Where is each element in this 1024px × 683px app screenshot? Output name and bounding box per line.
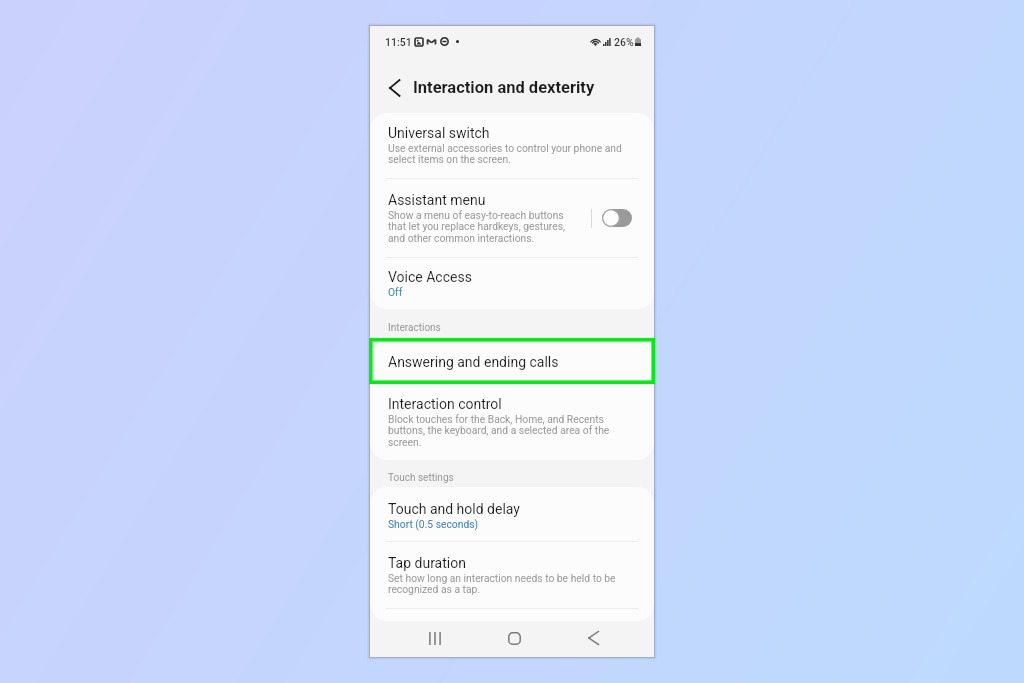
button[interactable]: Back [575,621,611,655]
button[interactable]: Recents [417,621,453,655]
staticText: Touch settings [388,472,454,484]
staticText: Use external accessories to control your… [388,142,628,166]
button[interactable]: Interaction control [370,384,654,460]
button[interactable]: Assistant menu toggle, off [602,209,632,227]
staticText: Set how long an interaction needs to be … [388,572,628,596]
staticText: Interaction and dexterity [413,78,595,97]
staticText: Voice Access [388,269,472,285]
button[interactable]: Answering and ending calls [370,340,654,384]
staticText: Tap duration [388,555,466,571]
button[interactable]: Tap duration [370,542,654,608]
button[interactable]: Touch and hold delay [370,487,654,541]
staticText: Show a menu of easy-to-reach buttons tha… [388,209,568,245]
button[interactable]: Voice Access [370,258,654,309]
staticText: Interaction control [388,396,502,412]
staticText: Short (0.5 seconds) [388,518,479,530]
button[interactable]: Universal switch [370,113,654,178]
staticText: Interactions [388,322,441,334]
staticText: Touch and hold delay [388,501,520,517]
staticText: Universal switch [388,125,490,141]
staticText: 26% [614,36,634,48]
staticText: Block touches for the Back, Home, and Re… [388,413,628,449]
button[interactable]: Back [383,76,407,100]
staticText: 11:51 [385,36,412,48]
staticText: Off [388,286,403,298]
button[interactable]: Assistant menu [370,179,654,257]
staticText: Answering and ending calls [388,354,559,370]
staticText: Assistant menu [388,192,486,208]
button[interactable]: Home [496,621,532,655]
